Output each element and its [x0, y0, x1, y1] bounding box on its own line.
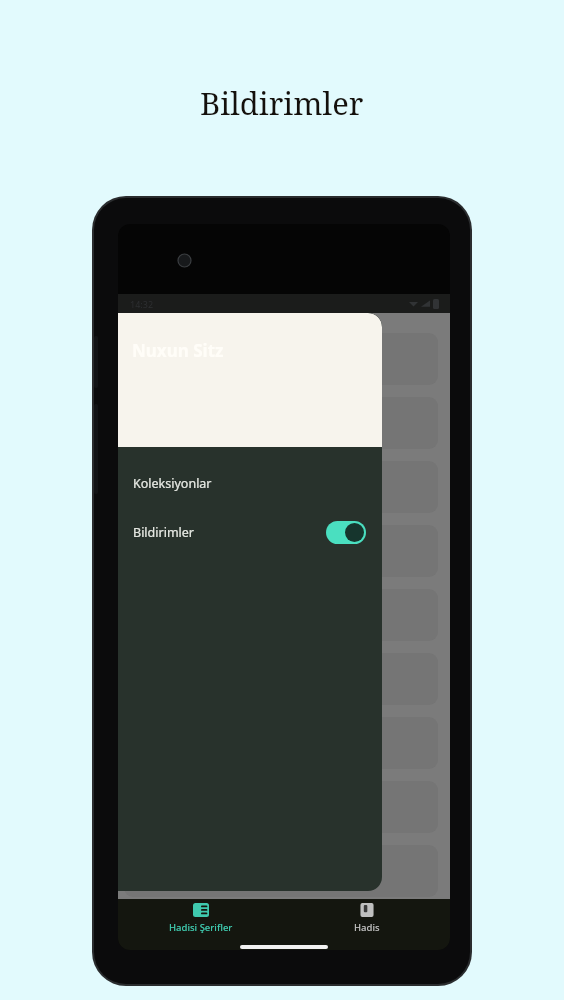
staticText: 14:32 — [130, 298, 154, 310]
button[interactable] — [124, 589, 438, 641]
button[interactable] — [124, 717, 438, 769]
button[interactable]: Bildirimler toggle — [326, 521, 366, 544]
button[interactable] — [124, 461, 438, 513]
button[interactable] — [124, 781, 438, 833]
button[interactable]: Bildirimler — [118, 511, 382, 553]
button[interactable] — [124, 397, 438, 449]
staticText: Hadis — [354, 921, 380, 934]
button[interactable]: Hadisi Şerifler — [118, 902, 284, 934]
staticText: Nuxun Sitz — [132, 339, 224, 362]
staticText: Bildirimler — [133, 524, 195, 541]
button[interactable] — [124, 653, 438, 705]
staticText: Koleksiyonlar — [133, 475, 212, 492]
button[interactable] — [124, 333, 438, 385]
staticText: Hadisi Şerifler — [169, 921, 233, 934]
button[interactable]: Koleksiyonlar — [118, 465, 382, 501]
button[interactable] — [124, 845, 438, 897]
button[interactable]: Hadis — [284, 902, 450, 934]
staticText: Bildirimler — [200, 82, 364, 124]
button[interactable] — [124, 525, 438, 577]
